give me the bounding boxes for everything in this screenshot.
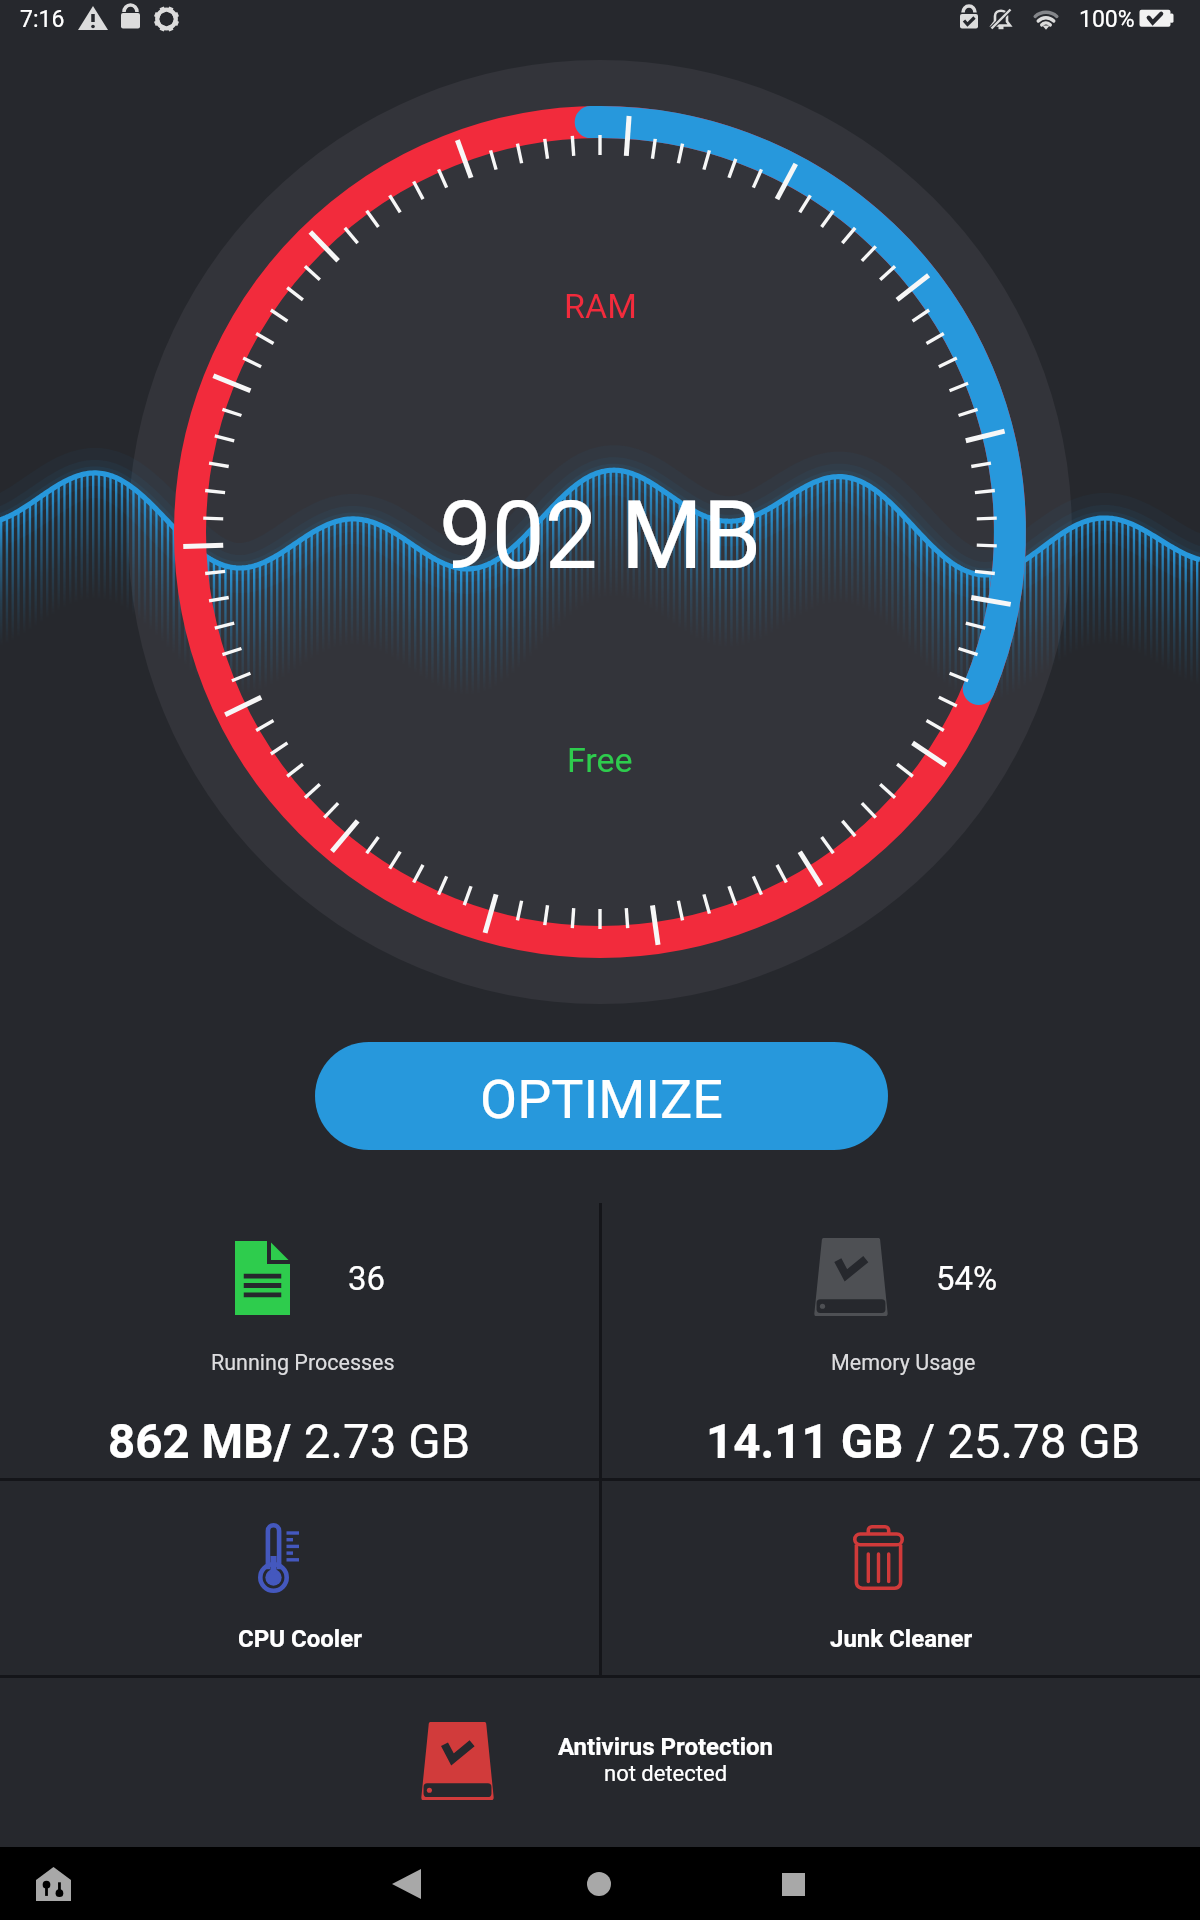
button[interactable]: Home settings [23,1854,83,1914]
staticText: Memory Usage [831,1350,976,1375]
button[interactable]: Antivirus Protection [0,1678,1200,1847]
staticText: Antivirus Protection [558,1733,774,1761]
staticText: 902 MB [439,481,762,591]
button[interactable]: Back [376,1854,436,1914]
button[interactable]: 54% [602,1203,1200,1478]
staticText: RAM [564,286,637,326]
staticText: OPTIMIZE [480,1068,723,1131]
staticText: 14.11 GB [706,1414,904,1470]
staticText: CPU Cooler [238,1625,362,1653]
staticText: Junk Cleaner [830,1625,973,1653]
staticText: 36 [348,1259,386,1298]
staticText: not detected [604,1761,728,1787]
button[interactable]: Home [569,1854,629,1914]
staticText: Free [567,740,633,780]
staticText: 2.73 GB [292,1414,471,1470]
staticText: / 25.78 GB [904,1414,1141,1470]
button[interactable]: CPU Cooler [0,1481,599,1675]
staticText: Running Processes [211,1350,395,1375]
staticText: 862 MB/ [108,1414,292,1470]
button[interactable]: OPTIMIZE [315,1042,888,1150]
button[interactable]: Junk Cleaner [602,1481,1200,1675]
staticText: 54% [936,1259,998,1298]
button[interactable]: Recent apps [763,1854,823,1914]
staticText: 100% [1079,6,1135,33]
staticText: 7:16 [20,6,65,33]
button[interactable]: 36 [0,1203,599,1478]
